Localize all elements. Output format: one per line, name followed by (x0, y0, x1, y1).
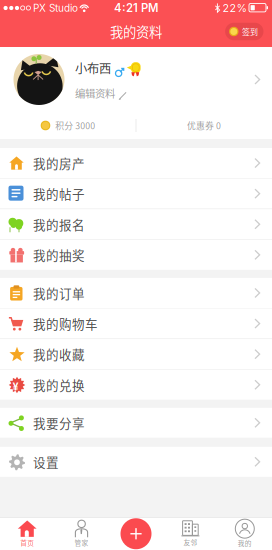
button[interactable]: 我的订单 (0, 278, 272, 308)
button[interactable]: 管家 (54, 518, 109, 550)
staticText: 4:21 PM (114, 1, 158, 15)
staticText: 友邻 (183, 537, 197, 547)
staticText: 小布西 (75, 59, 111, 77)
button[interactable]: Add (109, 517, 163, 550)
button[interactable]: 优惠券 0 (136, 112, 272, 139)
button[interactable]: 我的收藏 (0, 339, 272, 369)
button[interactable]: 首页 (0, 518, 54, 550)
button[interactable]: 我的 (218, 518, 272, 550)
button[interactable]: 我的房产 (0, 148, 272, 178)
staticText: 编辑资料 (75, 85, 115, 101)
button[interactable]: 我的购物车 (0, 308, 272, 339)
button[interactable]: 我要分享 (0, 408, 272, 438)
button[interactable]: 我的抽奖 (0, 240, 272, 270)
staticText: ¥ (12, 380, 18, 393)
staticText: 我的抽奖 (33, 246, 85, 264)
staticText: 22% (222, 1, 246, 14)
button[interactable]: 积分 3000 (0, 112, 136, 139)
staticText: 优惠券 0 (187, 119, 221, 132)
button[interactable]: 我的帖子 (0, 179, 272, 209)
button[interactable]: 友邻 (163, 518, 218, 550)
button[interactable]: 我的报名 (0, 209, 272, 239)
button[interactable]: 设置 (0, 447, 272, 477)
staticText: 管家 (75, 538, 89, 547)
staticText: 我的房产 (33, 154, 85, 172)
staticText: PX Studio (33, 2, 78, 14)
staticText: 积分 3000 (55, 119, 95, 132)
staticText: 我的报名 (33, 215, 85, 233)
button[interactable]: 签到 (225, 23, 263, 40)
staticText: 我的购物车 (33, 314, 98, 333)
button[interactable]: ¥ (0, 370, 272, 400)
staticText: 我的收藏 (33, 345, 85, 363)
staticText: 我的 (238, 538, 252, 548)
staticText: 我的帖子 (33, 185, 85, 203)
staticText: 设置 (33, 453, 59, 471)
staticText: 我的订单 (33, 284, 85, 302)
staticText: 签到 (242, 26, 258, 37)
staticText: 首页 (20, 538, 34, 547)
button[interactable]: 小布西 (0, 47, 272, 112)
staticText: 我的兑换 (33, 376, 85, 394)
staticText: 我的资料 (110, 22, 162, 41)
staticText: 我要分享 (33, 414, 85, 432)
